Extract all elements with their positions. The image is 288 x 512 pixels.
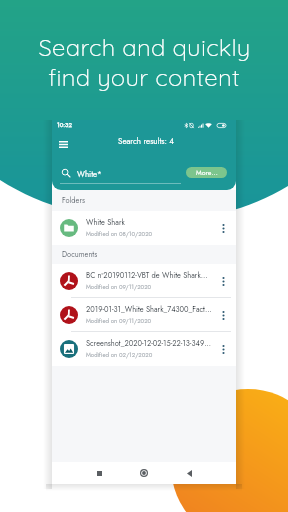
button[interactable]: Screenshot_2020-12-02-15-22-13-349…	[52, 332, 236, 366]
button[interactable]: More options	[216, 268, 230, 294]
button[interactable]: Home	[135, 464, 153, 482]
staticText: White*	[77, 168, 102, 180]
button[interactable]: White Shark	[52, 211, 236, 245]
staticText: More…	[196, 168, 218, 178]
staticText: Modified on 08/10/2020	[86, 230, 153, 239]
button[interactable]: Recents	[90, 464, 108, 482]
button[interactable]: Back	[180, 464, 198, 482]
staticText: Modified on 02/12/2020	[86, 351, 153, 360]
staticText: BC nº20190112-VBT de White Shark…	[86, 270, 208, 281]
staticText: Modified on 09/11/2020	[86, 317, 152, 326]
button[interactable]: BC nº20190112-VBT de White Shark…	[52, 264, 236, 298]
button[interactable]: More options	[216, 336, 230, 362]
staticText: White Shark	[86, 217, 125, 228]
staticText: Search results: 4	[118, 135, 175, 147]
staticText: Modified on 09/11/2020	[86, 283, 152, 292]
staticText: Documents	[62, 249, 98, 260]
staticText: find your content	[48, 62, 240, 92]
button[interactable]: Menu	[54, 135, 72, 153]
staticText: Screenshot_2020-12-02-15-22-13-349…	[86, 338, 211, 349]
button[interactable]: 2019-01-31_White Shark_74300_Fact…	[52, 298, 236, 332]
button[interactable]: More options	[216, 302, 230, 328]
button[interactable]: More options	[216, 215, 230, 241]
staticText: 10:32	[57, 121, 72, 130]
button[interactable]: More…	[186, 167, 227, 178]
staticText: 2019-01-31_White Shark_74300_Fact…	[86, 304, 212, 315]
staticText: Search and quickly	[38, 32, 251, 62]
staticText: Folders	[62, 195, 86, 206]
